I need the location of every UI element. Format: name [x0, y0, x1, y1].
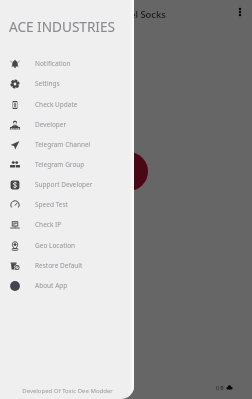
button[interactable]: Support Developer: [0, 175, 134, 195]
staticText: Developed Of Toxic Dee Modder: [22, 387, 113, 395]
staticText: Notification: [35, 59, 71, 68]
button[interactable]: Restore Default: [0, 256, 134, 276]
button[interactable]: More options: [229, 1, 251, 23]
button[interactable]: Open navigation drawer: [4, 1, 28, 25]
button[interactable]: Notification: [0, 54, 134, 74]
staticText: Check Update: [35, 100, 78, 109]
staticText: Settings: [35, 79, 60, 88]
button[interactable]: Geo Location: [0, 236, 134, 256]
staticText: About App: [35, 281, 68, 290]
button[interactable]: Telegram Group: [0, 155, 134, 175]
staticText: Support Developer: [35, 180, 93, 189]
staticText: Check IP: [35, 220, 62, 229]
button[interactable]: Check IP: [0, 215, 134, 235]
staticText: Multi Tunnel Socks: [82, 8, 166, 21]
staticText: Telegram Channel: [35, 140, 91, 149]
staticText: Developer: [35, 120, 67, 129]
button[interactable]: Connect: [109, 152, 148, 191]
staticText: Telegram Group: [35, 160, 85, 169]
staticText: ACE INDUSTRIES: [9, 17, 116, 36]
button[interactable]: Developer: [0, 115, 134, 135]
button[interactable]: About App: [0, 276, 134, 296]
staticText: Speed Test: [35, 200, 68, 209]
staticText: Geo Location: [35, 241, 76, 250]
button[interactable]: Telegram Channel: [0, 135, 134, 155]
button[interactable]: Check Update: [0, 95, 134, 115]
staticText: Restore Default: [35, 261, 83, 270]
button[interactable]: Settings: [0, 74, 134, 94]
button[interactable]: Speed Test: [0, 195, 134, 215]
staticText: 0 B: [216, 384, 224, 391]
